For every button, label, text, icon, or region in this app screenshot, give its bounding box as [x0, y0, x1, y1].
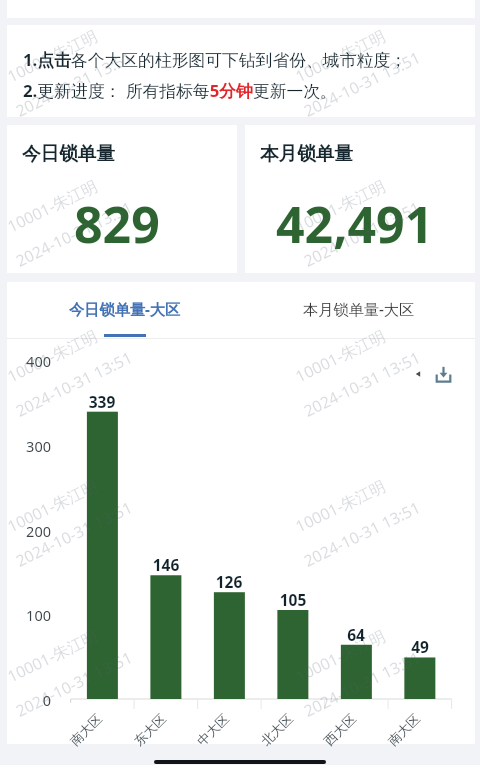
staticText: 2024-10-31 13:51 [12, 496, 135, 570]
staticText: 10001-朱江明 [4, 24, 100, 85]
staticText: 2024-10-31 13:51 [300, 496, 423, 570]
staticText: 0 [0, 690, 51, 710]
staticText: 2024-10-31 13:51 [300, 196, 423, 270]
staticText: 105 [263, 589, 323, 610]
staticText: 10001-朱江明 [4, 624, 100, 685]
staticText: 中大区 [194, 711, 233, 749]
button[interactable]: Scroll left [408, 364, 428, 384]
staticText: 100 [0, 605, 51, 625]
staticText: 339 [72, 391, 132, 412]
staticText: 2024-10-31 13:51 [300, 346, 423, 420]
button[interactable]: 今日锁单量 [7, 125, 237, 273]
staticText: 2024-10-31 13:51 [300, 46, 423, 120]
staticText: 10001-朱江明 [292, 24, 388, 85]
staticText: 2024-10-31 13:51 [12, 46, 135, 120]
staticText: 10001-朱江明 [292, 474, 388, 535]
staticText: 10001-朱江明 [4, 324, 100, 385]
staticText: 西大区 [321, 711, 360, 749]
staticText: 北大区 [258, 711, 297, 749]
staticText: 2024-10-31 13:51 [12, 196, 135, 270]
staticText: 1.点击各个大区的柱形图可下钻到省份、城市粒度； [23, 48, 407, 71]
staticText: 南大区 [67, 711, 106, 749]
staticText: 本月锁单量-大区 [303, 299, 415, 320]
staticText: 64 [326, 624, 386, 645]
staticText: 2024-10-31 13:51 [12, 646, 135, 720]
button[interactable]: 今日锁单量-大区 [7, 282, 239, 338]
staticText: 300 [0, 436, 51, 456]
staticText: 2.更新进度： 所有指标每5分钟更新一次。 [23, 79, 337, 102]
staticText: 2024-10-31 13:51 [12, 346, 135, 420]
button[interactable]: Download chart [430, 361, 456, 387]
staticText: 10001-朱江明 [292, 324, 388, 385]
staticText: 10001-朱江明 [292, 624, 388, 685]
staticText: 126 [199, 571, 259, 592]
staticText: 今日锁单量 [22, 142, 115, 165]
staticText: 今日锁单量-大区 [69, 299, 181, 320]
staticText: 829 [74, 190, 160, 258]
staticText: 400 [0, 351, 51, 371]
staticText: 42,491 [276, 190, 434, 258]
staticText: 146 [136, 554, 196, 575]
staticText: 南大区 [385, 711, 424, 749]
button[interactable]: 本月锁单量-大区 [241, 282, 473, 338]
staticText: 2024-10-31 13:51 [300, 646, 423, 720]
staticText: 200 [0, 521, 51, 541]
button[interactable]: 本月锁单量 [245, 125, 475, 273]
staticText: 东大区 [131, 711, 170, 749]
staticText: 49 [390, 636, 450, 657]
staticText: 10001-朱江明 [4, 474, 100, 535]
staticText: 10001-朱江明 [292, 174, 388, 235]
staticText: 本月锁单量 [260, 142, 353, 165]
staticText: 10001-朱江明 [4, 174, 100, 235]
